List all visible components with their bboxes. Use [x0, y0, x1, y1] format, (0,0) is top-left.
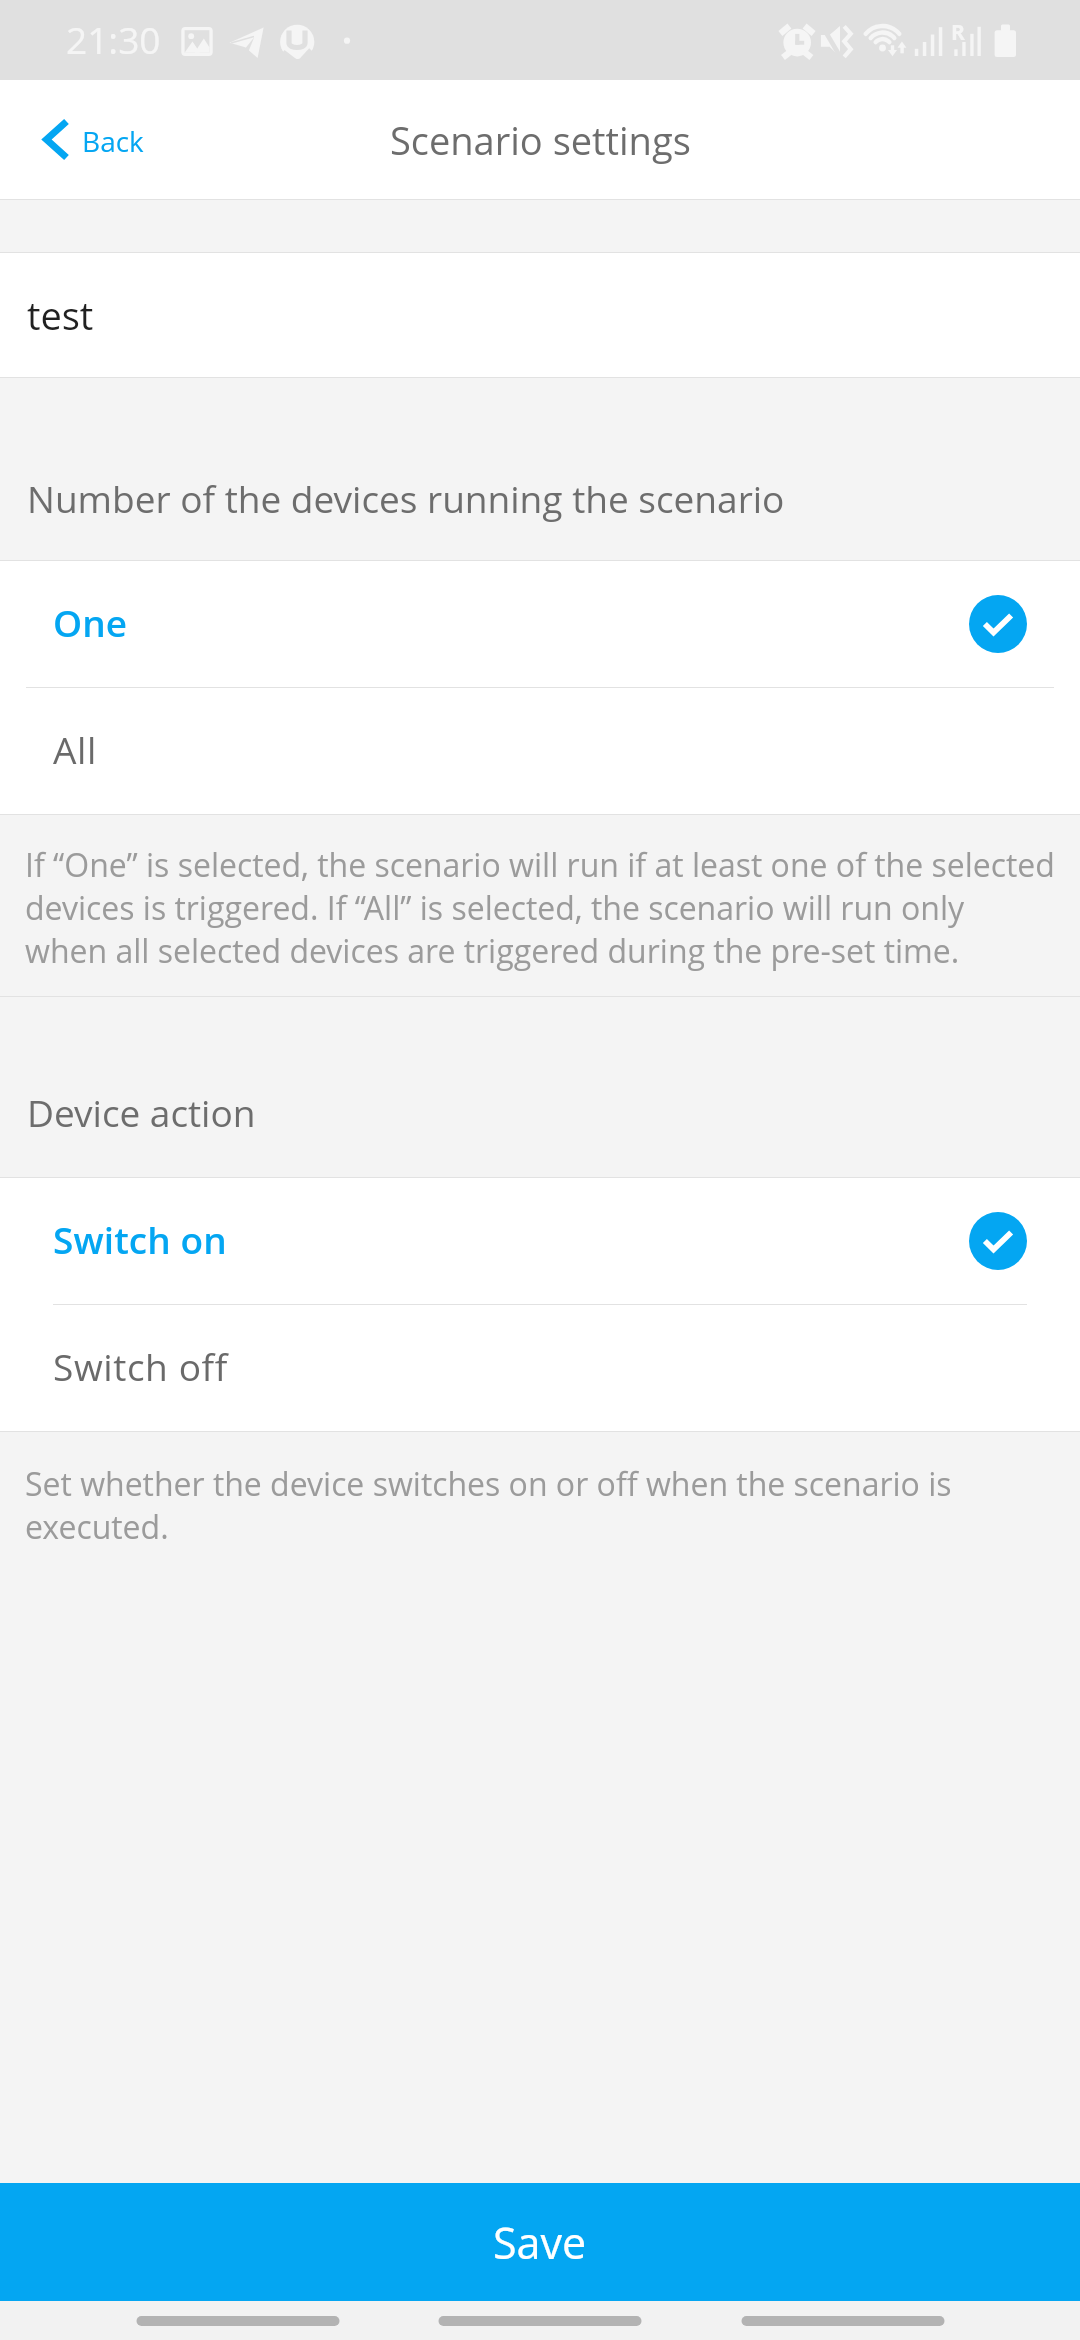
staticText: If “One” is selected, the scenario will …: [25, 843, 1055, 972]
button[interactable]: Switch on: [0, 1178, 1080, 1304]
staticText: One: [53, 597, 128, 647]
button[interactable]: Switch off: [0, 1305, 1080, 1431]
button[interactable]: All: [0, 688, 1080, 814]
staticText: Device action: [27, 1087, 256, 1137]
staticText: Back: [82, 122, 144, 160]
staticText: Number of the devices running the scenar…: [27, 473, 785, 523]
button[interactable]: test: [0, 253, 1080, 377]
staticText: All: [53, 724, 97, 774]
staticText: test: [27, 289, 94, 341]
staticText: 21:30: [66, 14, 161, 64]
staticText: Switch on: [53, 1214, 227, 1264]
button[interactable]: One: [0, 561, 1080, 687]
button[interactable]: Back: [0, 80, 200, 199]
staticText: R: [951, 18, 965, 47]
staticText: Set whether the device switches on or of…: [25, 1462, 952, 1548]
other: Selected: [969, 595, 1027, 653]
staticText: Scenario settings: [390, 114, 691, 166]
button[interactable]: Save: [0, 2183, 1080, 2301]
staticText: Save: [493, 2213, 587, 2272]
other: Selected: [969, 1212, 1027, 1270]
staticText: Switch off: [53, 1341, 228, 1391]
